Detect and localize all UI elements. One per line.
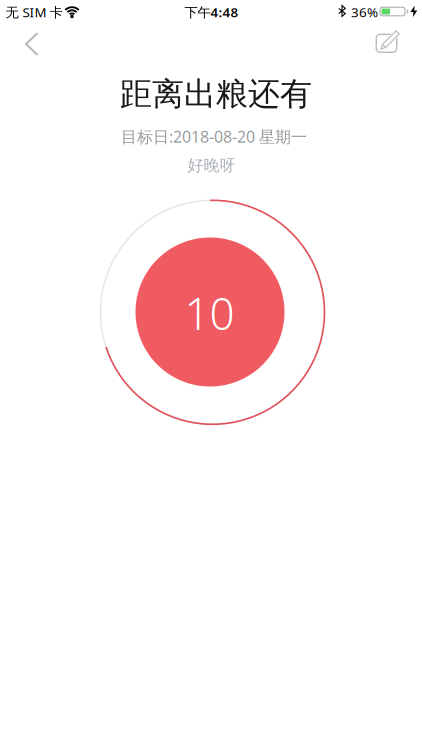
staticText: 36%: [351, 3, 378, 21]
staticText: 目标日:2018-08-20 星期一: [121, 126, 307, 147]
button[interactable]: Back: [11, 24, 51, 64]
staticText: 距离出粮还有: [120, 74, 312, 114]
staticText: 下午4:48: [184, 3, 238, 21]
staticText: 好晚呀: [187, 156, 235, 175]
staticText: 10: [184, 284, 234, 342]
staticText: 无 SIM 卡: [5, 3, 62, 21]
button[interactable]: Edit: [367, 23, 407, 63]
